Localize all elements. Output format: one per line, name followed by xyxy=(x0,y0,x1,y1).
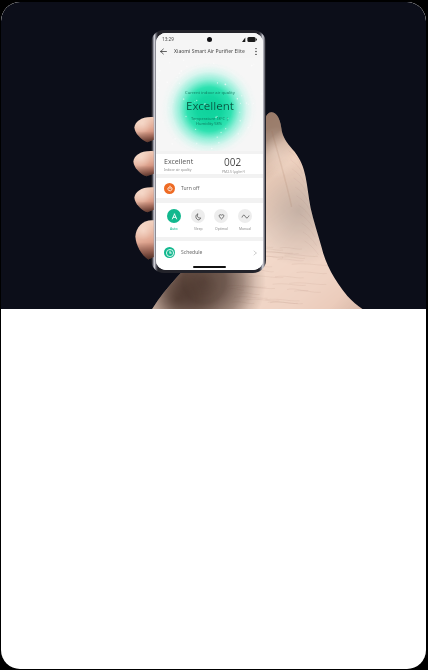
staticText: Schedule xyxy=(181,249,203,256)
staticText: Humidity 58% xyxy=(196,121,223,126)
button[interactable]: Optimal xyxy=(213,209,229,231)
staticText: 002 xyxy=(224,155,242,169)
button[interactable]: More options xyxy=(250,46,261,57)
staticText: Excellent xyxy=(164,157,194,167)
button[interactable]: Manual xyxy=(237,209,253,231)
staticText: Xiaomi Smart Air Purifier Elite xyxy=(174,48,245,55)
staticText: PM2.5 (µg/m³) xyxy=(222,169,245,174)
staticText: Current indoor air quality xyxy=(185,90,235,96)
staticText: Optimal xyxy=(215,226,228,231)
staticText: Temperature 18°C | xyxy=(191,116,229,121)
button[interactable]: Turn off xyxy=(156,178,263,198)
staticText: Auto xyxy=(170,226,178,231)
staticText: Indoor air quality xyxy=(164,167,192,172)
staticText: Manual xyxy=(239,226,251,231)
button[interactable]: Back xyxy=(158,46,169,57)
staticText: Turn off xyxy=(181,185,200,192)
button[interactable]: Schedule xyxy=(156,241,263,264)
staticText: Excellent xyxy=(186,98,234,114)
button[interactable]: Sleep xyxy=(190,209,206,231)
staticText: Sleep xyxy=(194,226,203,231)
button[interactable]: Auto xyxy=(166,209,182,231)
staticText: 13:29 xyxy=(162,36,174,42)
